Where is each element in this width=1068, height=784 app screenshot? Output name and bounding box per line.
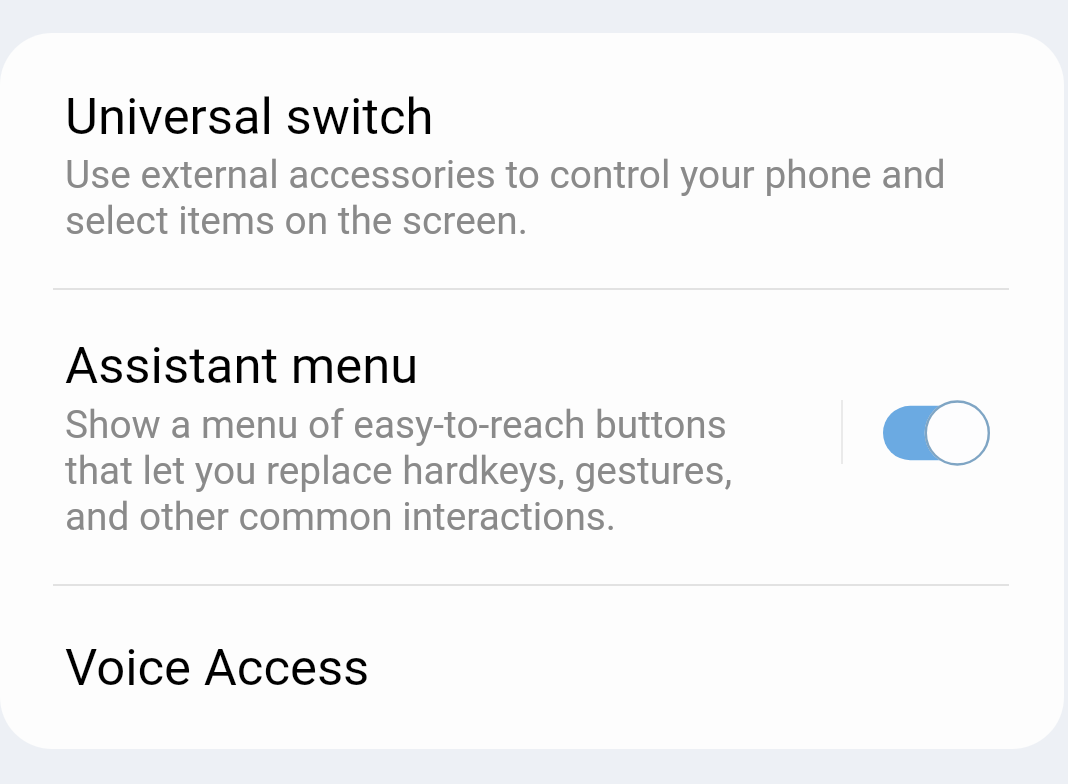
button[interactable]: Assistant menu [0, 290, 1068, 584]
staticText: Universal switch [65, 87, 434, 147]
button[interactable]: Voice Access [0, 586, 1068, 750]
button[interactable]: Universal switch [0, 32, 1068, 288]
staticText: Voice Access [65, 638, 370, 698]
staticText: Show a menu of easy-to-reach buttons tha… [65, 402, 733, 540]
staticText: Use external accessories to control your… [65, 152, 946, 244]
staticText: Assistant menu [65, 336, 419, 396]
button[interactable]: Assistant menu toggle [860, 372, 1010, 494]
